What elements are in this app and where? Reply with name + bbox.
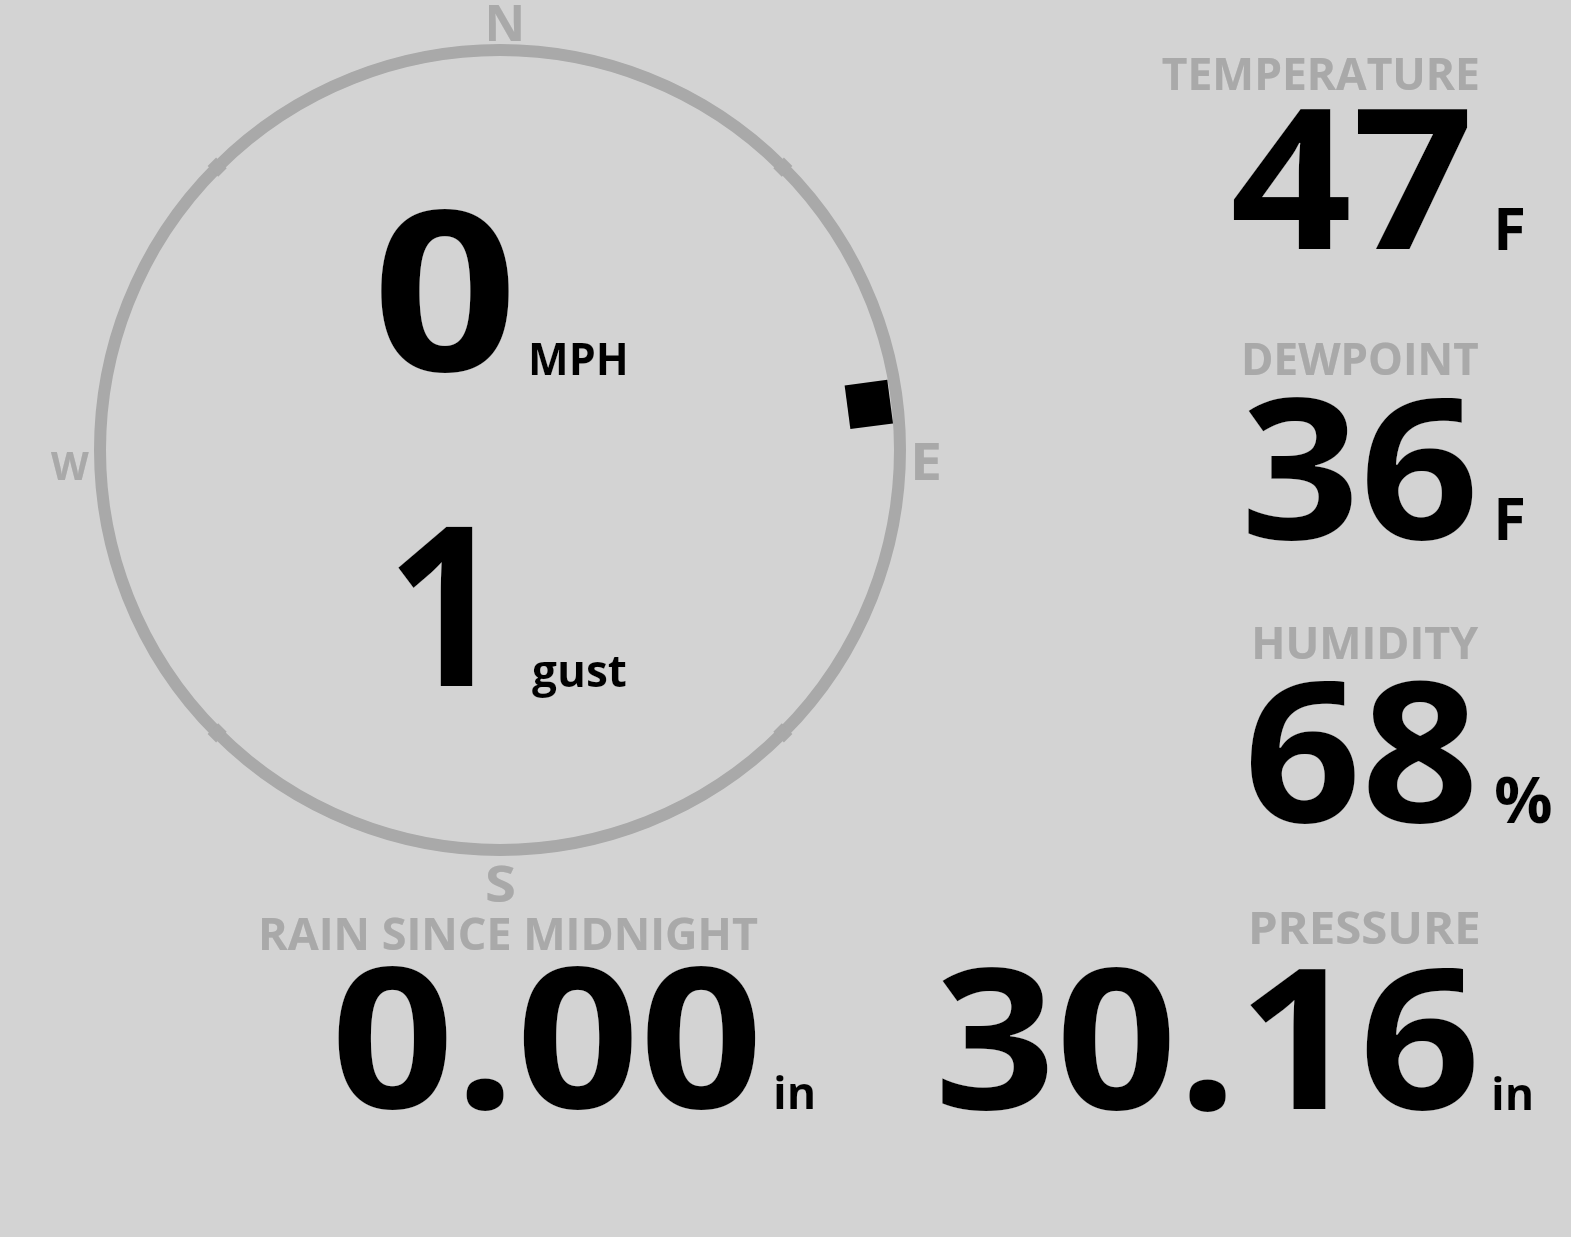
button[interactable]: Rain since midnight 0.00 in [240, 895, 800, 1125]
button[interactable]: Dewpoint 36 F [1150, 325, 1571, 555]
button[interactable]: Pressure 30.16 in [1150, 895, 1571, 1125]
button[interactable]: Temperature 47 F [1150, 40, 1571, 270]
button[interactable]: Wind speed 0 MPH, gusting 1, from the ea… [96, 46, 904, 854]
button[interactable]: Humidity 68 percent [1150, 610, 1571, 840]
